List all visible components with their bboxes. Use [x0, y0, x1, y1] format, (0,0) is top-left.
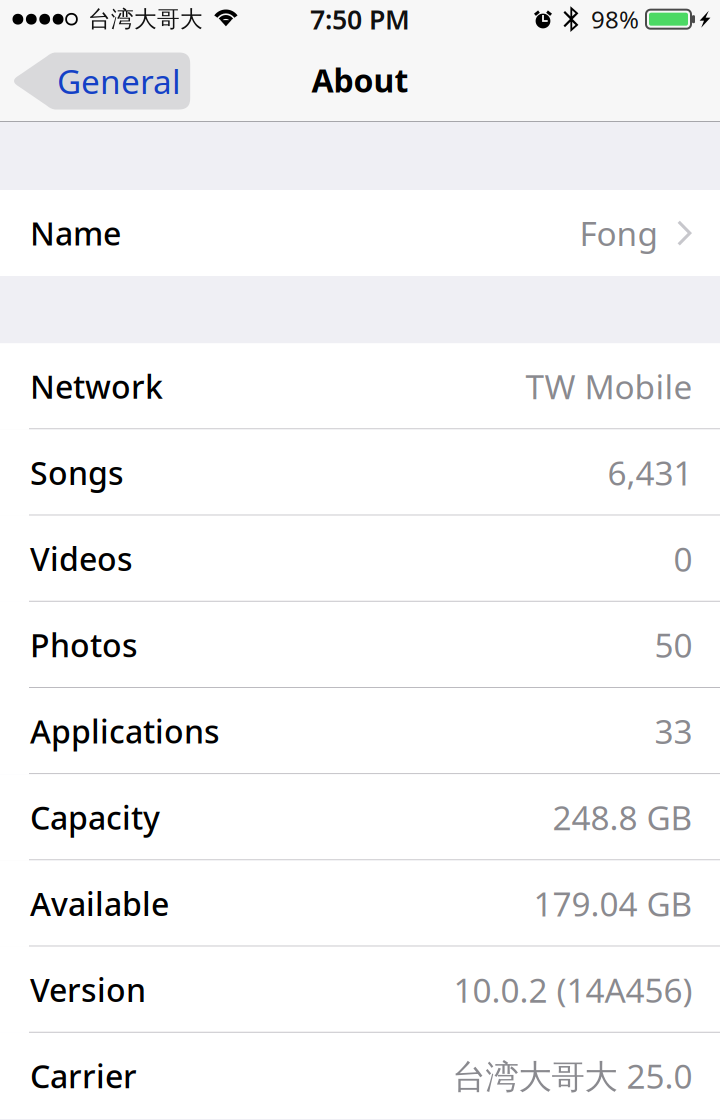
button[interactable]: Videos [0, 516, 720, 602]
staticText: 179.04 GB [533, 881, 692, 926]
staticText: Version [30, 968, 146, 1011]
staticText: 248.8 GB [552, 795, 692, 839]
button[interactable]: Network [0, 343, 720, 429]
staticText: Fong [580, 211, 659, 255]
staticText: 6,431 [607, 450, 692, 495]
button[interactable]: Capacity [0, 774, 720, 860]
button[interactable]: Available [0, 860, 720, 947]
staticText: About [311, 59, 408, 101]
button[interactable]: Applications [0, 688, 720, 774]
staticText: 10.0.2 (14A456) [453, 968, 692, 1012]
staticText: Photos [30, 624, 138, 666]
staticText: 7:50 PM [310, 1, 410, 37]
staticText: TW Mobile [525, 364, 692, 408]
staticText: 50 [654, 623, 692, 667]
button[interactable]: Songs [0, 429, 720, 516]
staticText: 33 [654, 709, 692, 753]
button[interactable]: Carrier [0, 1033, 720, 1119]
button[interactable]: Name [0, 190, 720, 276]
staticText: Videos [30, 537, 133, 580]
staticText: 台湾大哥大 [88, 5, 203, 33]
staticText: Name [30, 212, 121, 254]
button[interactable]: Photos [0, 602, 720, 688]
button[interactable]: General [12, 52, 190, 109]
staticText: Capacity [30, 796, 160, 839]
staticText: Available [30, 882, 169, 925]
staticText: 台湾大哥大 25.0 [452, 1054, 692, 1098]
staticText: 98% [591, 3, 639, 35]
staticText: Applications [30, 710, 220, 752]
button[interactable]: Version [0, 947, 720, 1033]
staticText: Songs [30, 451, 124, 494]
staticText: General [57, 59, 181, 103]
staticText: 0 [673, 537, 692, 581]
staticText: Network [30, 365, 163, 408]
staticText: Carrier [30, 1055, 137, 1097]
